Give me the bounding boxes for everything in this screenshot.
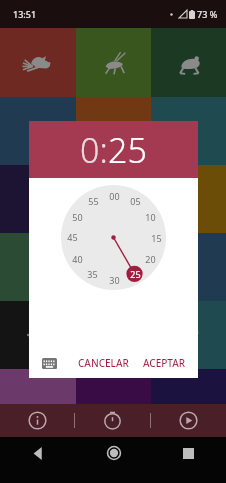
button[interactable] xyxy=(0,165,76,233)
button[interactable]: CANCELAR xyxy=(72,352,135,374)
staticText: 13:51 xyxy=(13,8,37,20)
button[interactable] xyxy=(151,97,226,165)
button[interactable]: Recents xyxy=(151,437,226,469)
button[interactable]: Cricket xyxy=(76,28,151,97)
button[interactable]: ACEPTAR xyxy=(137,352,192,374)
other: Snow xyxy=(26,323,50,347)
button[interactable] xyxy=(151,165,226,233)
button[interactable] xyxy=(0,369,76,404)
staticText: 00 xyxy=(109,190,120,202)
staticText: 05 xyxy=(130,195,141,207)
button[interactable]: Snow xyxy=(0,301,76,369)
button[interactable]: Bird xyxy=(0,28,76,97)
button[interactable]: Info xyxy=(0,404,74,437)
staticText: 35 xyxy=(87,268,98,280)
staticText: ACEPTAR xyxy=(143,356,186,370)
staticText: 10 xyxy=(145,211,156,223)
button[interactable]: Play xyxy=(151,404,226,437)
other: Cricket xyxy=(99,48,129,78)
staticText: 73 % xyxy=(197,8,218,20)
button[interactable]: Timer xyxy=(75,404,150,437)
staticText: 30 xyxy=(109,274,120,286)
staticText: 15 xyxy=(151,232,162,244)
button[interactable] xyxy=(0,233,76,301)
other: Wind xyxy=(176,322,202,348)
staticText: 55 xyxy=(88,195,99,207)
staticText: 25 xyxy=(108,127,147,173)
staticText: 50 xyxy=(72,211,83,223)
other: Frog xyxy=(173,47,205,79)
button[interactable] xyxy=(76,369,151,404)
button[interactable]: Wind xyxy=(151,301,226,369)
button[interactable]: Keyboard input xyxy=(39,355,59,371)
button[interactable]: Frog xyxy=(151,28,226,97)
button[interactable]: Down xyxy=(76,301,151,369)
button[interactable] xyxy=(61,185,166,290)
button[interactable]: Back xyxy=(0,437,76,469)
staticText: 40 xyxy=(72,253,83,265)
staticText: 0: xyxy=(80,127,108,173)
button[interactable] xyxy=(76,97,151,165)
button[interactable]: Home xyxy=(76,437,151,469)
staticText: CANCELAR xyxy=(78,356,129,370)
button[interactable] xyxy=(0,97,76,165)
button[interactable] xyxy=(151,233,226,301)
staticText: 45 xyxy=(67,231,78,243)
button[interactable] xyxy=(76,165,151,233)
button[interactable] xyxy=(151,369,226,404)
other: Bird xyxy=(21,46,55,80)
staticText: 20 xyxy=(145,253,156,265)
button[interactable] xyxy=(76,233,151,301)
staticText: 25 xyxy=(130,268,141,280)
